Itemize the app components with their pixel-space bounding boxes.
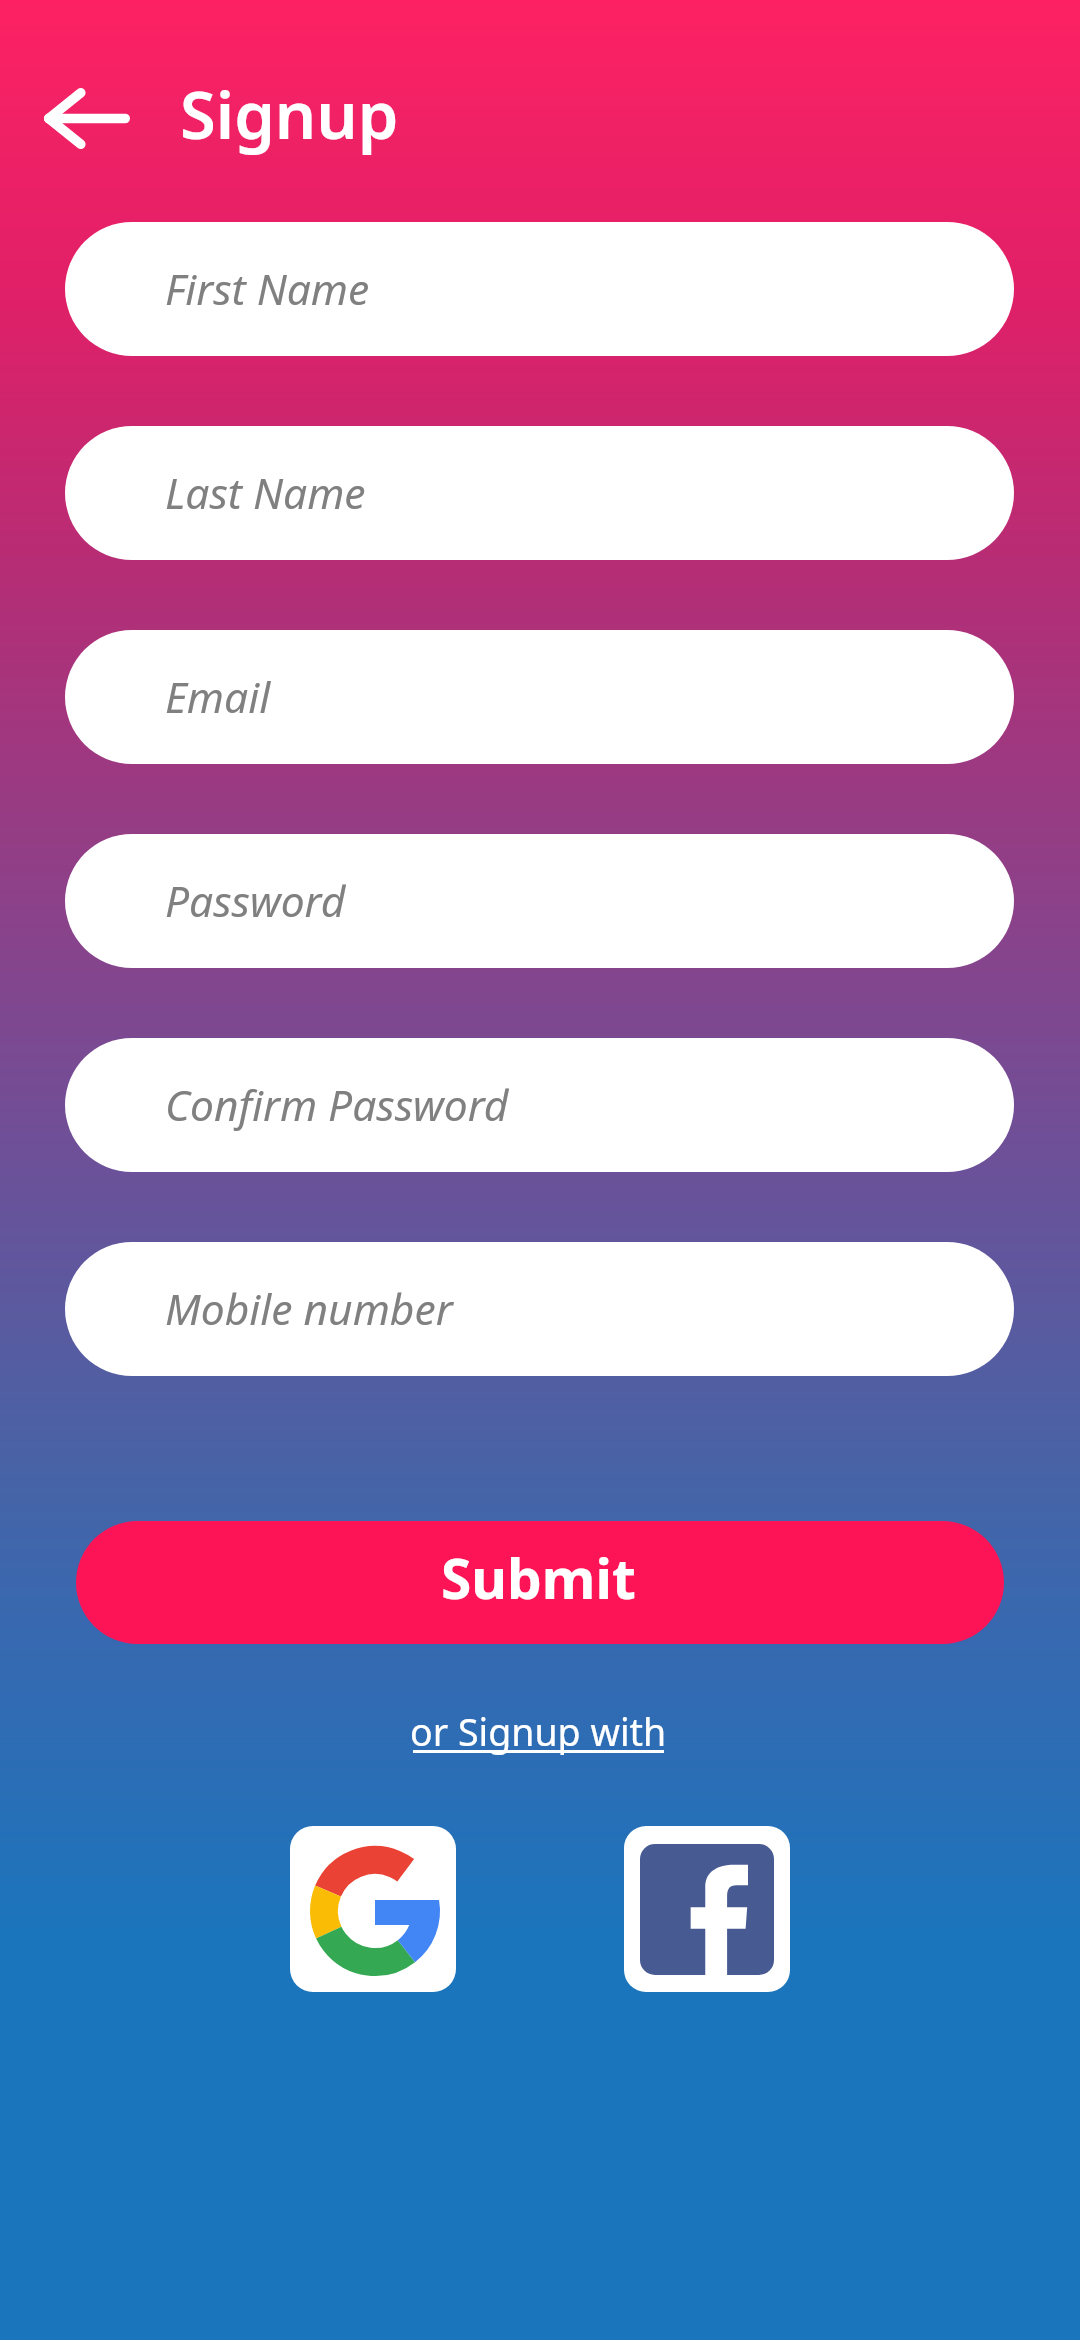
staticText: Signup: [180, 70, 399, 159]
button[interactable]: Sign up with Facebook: [624, 1826, 790, 1992]
staticText: Password: [165, 872, 346, 930]
staticText: or Signup with: [410, 1706, 667, 1757]
button[interactable]: Password: [65, 834, 1014, 968]
staticText: Submit: [441, 1540, 636, 1615]
staticText: Mobile number: [165, 1280, 453, 1338]
button[interactable]: Last Name: [65, 426, 1014, 560]
button[interactable]: Sign up with Google: [290, 1826, 456, 1992]
button[interactable]: Submit: [76, 1521, 1004, 1644]
button[interactable]: or Signup with: [410, 1706, 667, 1757]
staticText: Last Name: [165, 464, 366, 522]
button[interactable]: Confirm Password: [65, 1038, 1014, 1172]
staticText: Confirm Password: [165, 1076, 509, 1134]
button[interactable]: Mobile number: [65, 1242, 1014, 1376]
button[interactable]: First Name: [65, 222, 1014, 356]
button[interactable]: Email: [65, 630, 1014, 764]
staticText: First Name: [165, 260, 370, 318]
button[interactable]: Back: [14, 59, 158, 179]
staticText: Email: [165, 668, 271, 726]
